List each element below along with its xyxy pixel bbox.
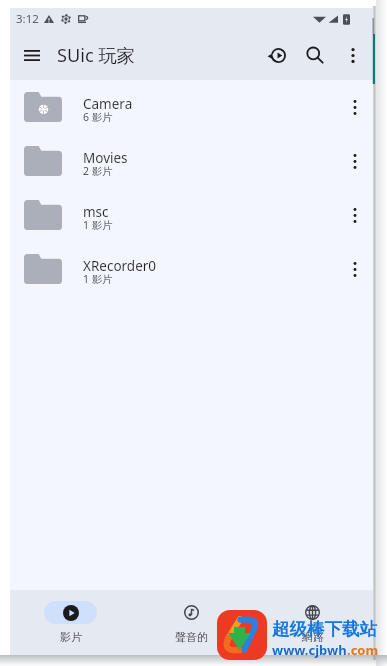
button[interactable]: Folder options xyxy=(336,143,373,180)
button[interactable]: Folder options xyxy=(336,197,373,234)
staticText: Camera xyxy=(83,95,133,113)
button[interactable]: History xyxy=(258,36,296,74)
staticText: 1 影片 xyxy=(83,272,113,286)
staticText: 1 影片 xyxy=(83,218,113,232)
button[interactable]: XRecorder0 xyxy=(10,242,373,296)
staticText: www.cjbwh xyxy=(272,641,347,659)
staticText: SUic 玩家 xyxy=(57,43,135,68)
button[interactable]: Folder options xyxy=(336,89,373,126)
button[interactable]: 影片 xyxy=(10,590,131,655)
button[interactable]: Search xyxy=(296,36,334,74)
button[interactable]: Folder options xyxy=(336,251,373,288)
staticText: 2 影片 xyxy=(83,164,113,178)
button[interactable]: 聲音的 xyxy=(131,590,252,655)
button[interactable]: 網路 xyxy=(252,590,373,655)
staticText: .com xyxy=(347,641,379,659)
staticText: 超级棒下载站 xyxy=(272,618,377,640)
button[interactable]: Movies xyxy=(10,134,373,188)
staticText: 影片 xyxy=(60,630,82,644)
button[interactable]: Camera xyxy=(10,80,373,134)
staticText: 6 影片 xyxy=(83,110,113,124)
staticText: Movies xyxy=(83,149,128,167)
staticText: XRecorder0 xyxy=(83,257,157,275)
staticText: 3:12 xyxy=(16,11,39,27)
button[interactable]: Navigation menu xyxy=(10,33,54,77)
button[interactable]: msc xyxy=(10,188,373,242)
staticText: 網路 xyxy=(302,630,324,644)
button[interactable]: More options xyxy=(334,36,372,74)
staticText: 聲音的 xyxy=(175,630,208,644)
staticText: msc xyxy=(83,203,109,221)
